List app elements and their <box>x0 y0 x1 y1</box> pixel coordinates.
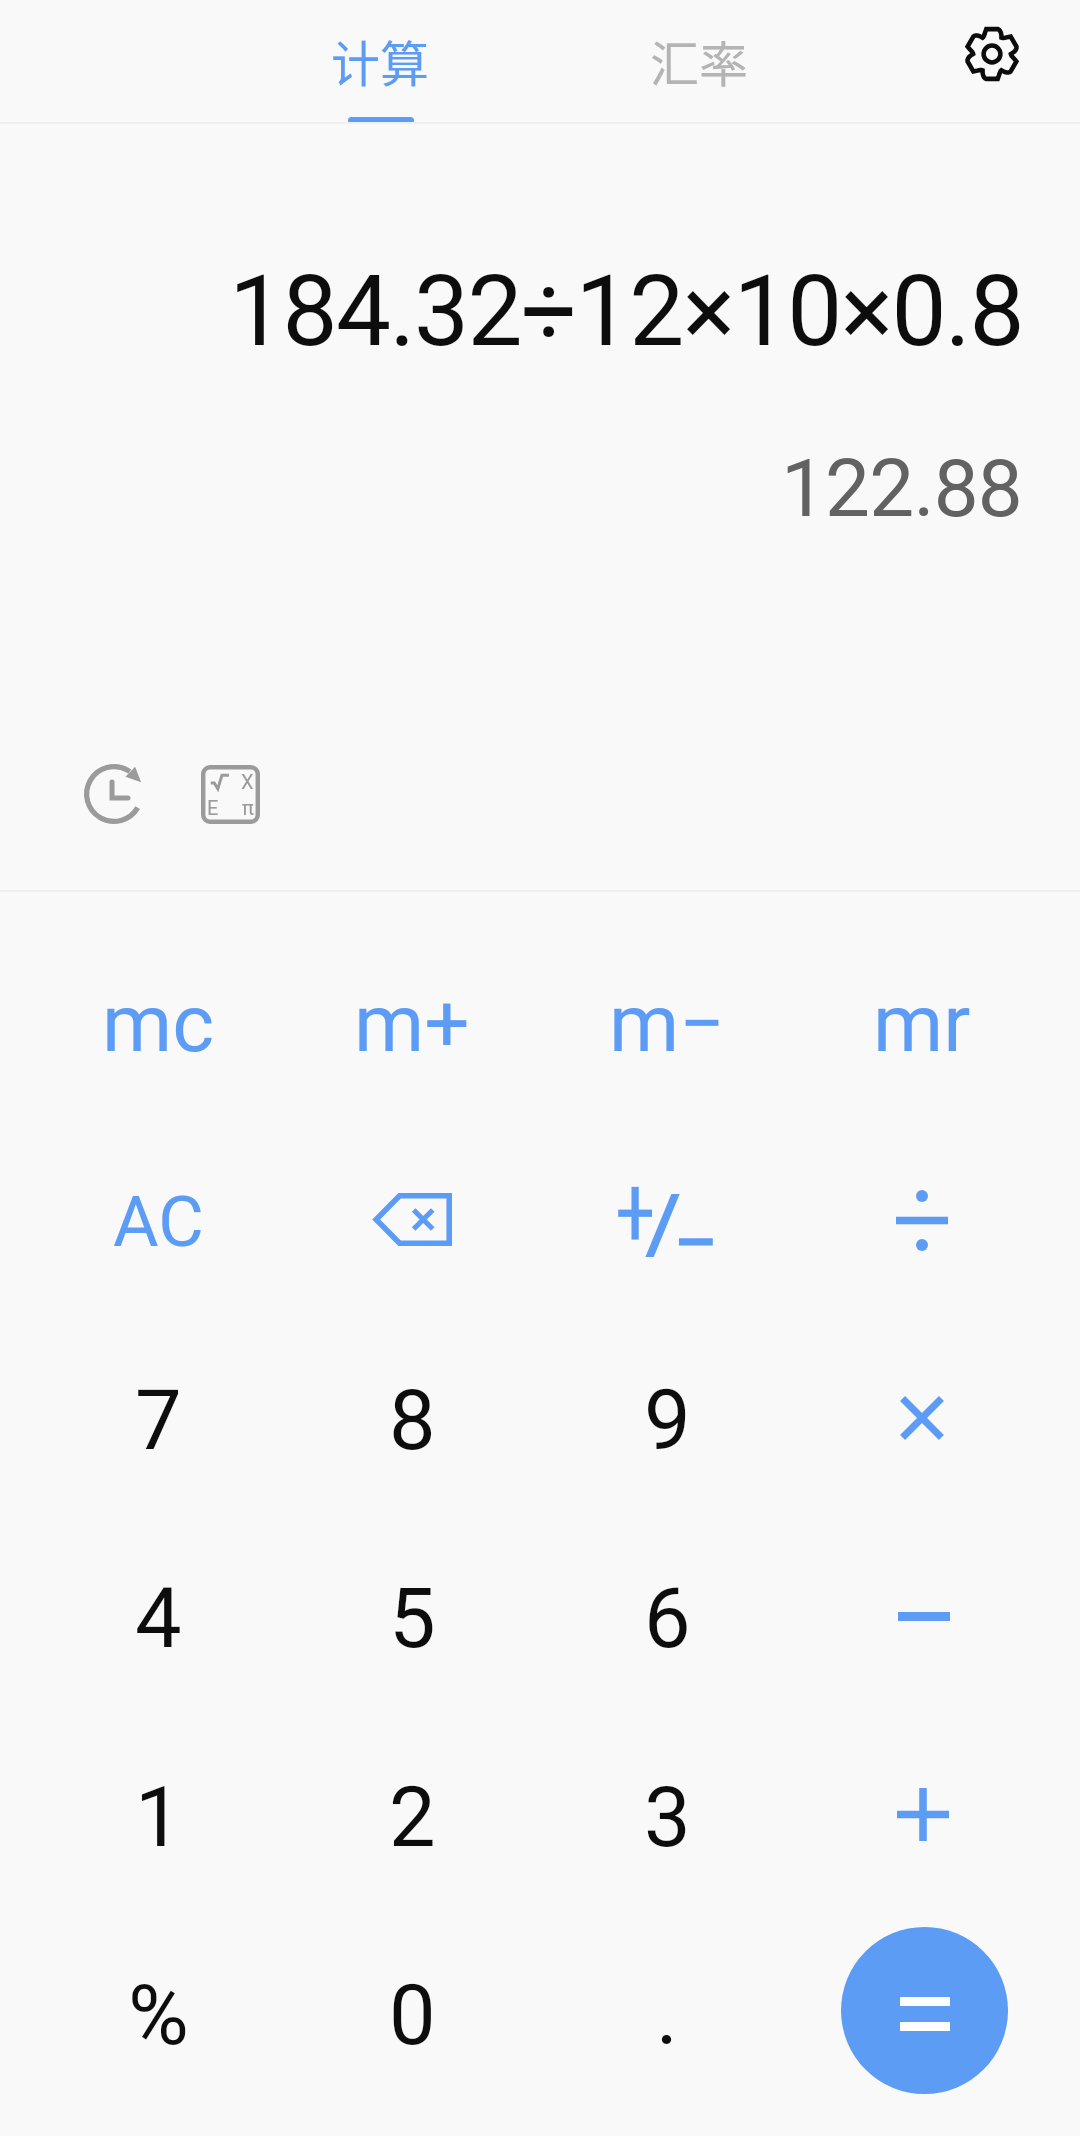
button[interactable]: m+ <box>285 924 539 1123</box>
button[interactable]: . <box>540 1916 794 2115</box>
staticText: 2 <box>389 1769 436 1866</box>
button[interactable]: 0 <box>285 1916 539 2115</box>
staticText: E <box>207 796 219 819</box>
staticText: 5 <box>389 1570 436 1667</box>
button[interactable]: 计算 <box>240 0 520 118</box>
button[interactable]: Equals <box>841 1927 1008 2094</box>
button[interactable]: 汇率 <box>559 0 839 118</box>
button[interactable]: m− <box>540 924 794 1123</box>
staticText: 122.88 <box>0 442 1022 536</box>
button[interactable]: mc <box>31 924 285 1123</box>
staticText: % <box>128 1967 189 2064</box>
staticText: 1 <box>135 1769 182 1866</box>
staticText: m+ <box>354 977 470 1071</box>
button[interactable] <box>795 1718 1049 1917</box>
button[interactable] <box>795 1122 1049 1321</box>
staticText: 9 <box>644 1372 691 1469</box>
button[interactable]: Settings <box>932 0 1052 118</box>
button[interactable]: 5 <box>285 1519 539 1718</box>
staticText: π <box>242 796 254 819</box>
staticText: 汇率 <box>650 25 749 96</box>
staticText: 4 <box>135 1570 182 1667</box>
button[interactable]: mr <box>795 924 1049 1123</box>
staticText: 6 <box>644 1570 691 1667</box>
button[interactable]: Plus minus <box>602 1179 732 1265</box>
button[interactable]: Backspace <box>285 1122 539 1321</box>
staticText: 3 <box>644 1769 691 1866</box>
staticText: mr <box>873 977 971 1071</box>
button[interactable]: Scientific calculator <box>184 748 276 840</box>
button[interactable]: Equals <box>795 1916 1049 2115</box>
button[interactable]: 6 <box>540 1519 794 1718</box>
staticText: 计算 <box>331 25 430 96</box>
button[interactable]: 3 <box>540 1718 794 1917</box>
staticText: 7 <box>135 1372 182 1469</box>
staticText: AC <box>113 1181 204 1263</box>
button[interactable]: 2 <box>285 1718 539 1917</box>
staticText: 0 <box>389 1967 436 2064</box>
staticText: 184.32÷12×10×0.8 <box>0 254 1023 369</box>
staticText: m− <box>609 977 725 1071</box>
button[interactable]: Backspace <box>347 1179 477 1265</box>
staticText: . <box>656 1967 678 2064</box>
button[interactable]: Plus minus <box>540 1122 794 1321</box>
button[interactable]: % <box>31 1916 285 2115</box>
button[interactable]: 8 <box>285 1321 539 1520</box>
button[interactable]: AC <box>31 1122 285 1321</box>
button[interactable]: 7 <box>31 1321 285 1520</box>
button[interactable] <box>795 1321 1049 1520</box>
button[interactable]: 1 <box>31 1718 285 1917</box>
staticText: 8 <box>389 1372 436 1469</box>
button[interactable]: 4 <box>31 1519 285 1718</box>
button[interactable]: 9 <box>540 1321 794 1520</box>
button[interactable]: History <box>68 748 160 840</box>
button[interactable] <box>795 1519 1049 1718</box>
staticText: mc <box>102 977 215 1071</box>
staticText: X <box>241 770 254 793</box>
